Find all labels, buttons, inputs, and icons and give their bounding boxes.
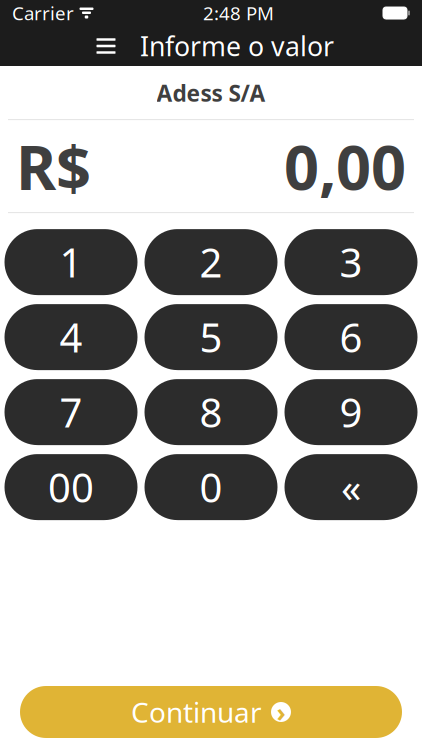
button[interactable]: Apagar (284, 454, 417, 520)
staticText: 4 (59, 310, 82, 364)
staticText: R$ (16, 125, 91, 207)
staticText: 2 (199, 235, 222, 289)
staticText: 0 (199, 460, 222, 514)
staticText: Informe o valor (140, 28, 334, 64)
staticText: 1 (59, 235, 82, 289)
button[interactable]: Menu (88, 26, 124, 66)
button[interactable]: 2 (144, 229, 277, 295)
staticText: 2:48 PM (203, 1, 274, 25)
button[interactable]: 0 (144, 454, 277, 520)
button[interactable]: 7 (4, 379, 137, 445)
staticText: 6 (339, 310, 362, 364)
button[interactable]: 3 (284, 229, 417, 295)
button[interactable]: 8 (144, 379, 277, 445)
staticText: Carrier (12, 1, 74, 25)
staticText: › (276, 695, 285, 729)
staticText: Continuar (131, 693, 262, 731)
button[interactable]: 9 (284, 379, 417, 445)
staticText: 9 (339, 385, 362, 439)
staticText: 3 (339, 235, 362, 289)
staticText: 8 (199, 385, 222, 439)
button[interactable]: 00 (4, 454, 137, 520)
staticText: « (341, 460, 361, 514)
button[interactable]: 5 (144, 304, 277, 370)
staticText: 5 (199, 310, 222, 364)
staticText: 0,00 (284, 125, 406, 207)
staticText: Adess S/A (156, 78, 265, 108)
button[interactable]: 1 (4, 229, 137, 295)
button[interactable]: 4 (4, 304, 137, 370)
button[interactable]: Continuar (20, 686, 402, 738)
staticText: 00 (48, 460, 94, 514)
button[interactable]: 6 (284, 304, 417, 370)
staticText: 7 (59, 385, 82, 439)
